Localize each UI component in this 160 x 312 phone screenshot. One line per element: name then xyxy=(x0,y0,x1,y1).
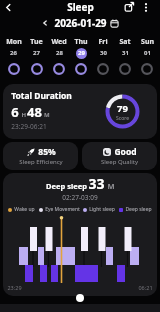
staticText: 2026-01-29 xyxy=(54,16,107,30)
staticText: 79 xyxy=(117,102,128,115)
button[interactable] xyxy=(142,2,150,13)
staticText: Mon xyxy=(6,37,22,47)
staticText: 48 xyxy=(27,103,42,121)
button[interactable] xyxy=(3,2,14,13)
staticText: 23:29 xyxy=(7,284,22,291)
staticText: 06:21 xyxy=(138,284,153,291)
button[interactable]: 01 xyxy=(136,47,158,59)
staticText: 6 xyxy=(11,103,19,121)
button[interactable]: 27 xyxy=(25,47,48,59)
staticText: 29 xyxy=(78,49,85,57)
button[interactable]: Deep sleep xyxy=(3,173,157,296)
staticText: 33 xyxy=(88,174,105,193)
staticText: Eye Movement xyxy=(45,206,80,213)
staticText: Wed xyxy=(51,37,67,47)
staticText: 28 xyxy=(56,49,63,57)
button[interactable]: 85% xyxy=(3,142,78,170)
button[interactable] xyxy=(123,1,135,13)
staticText: 85% xyxy=(38,146,56,158)
staticText: Wake up xyxy=(14,206,35,213)
button[interactable]: 29 xyxy=(70,47,92,59)
staticText: Sleep Quality xyxy=(101,158,138,166)
button[interactable]: Total Duration xyxy=(3,84,157,139)
staticText: H xyxy=(19,111,27,119)
staticText: Light sleep xyxy=(89,206,115,213)
staticText: 26 xyxy=(10,49,17,57)
staticText: Deep sleep xyxy=(125,206,152,213)
staticText: Sleep xyxy=(67,0,94,14)
button[interactable]: 30 xyxy=(92,47,114,59)
staticText: Total Duration xyxy=(11,90,72,102)
staticText: Score xyxy=(116,115,129,122)
staticText: 27 xyxy=(33,49,40,57)
staticText: Fri xyxy=(98,37,108,47)
staticText: M xyxy=(42,111,50,119)
staticText: Sun xyxy=(141,37,154,47)
button[interactable]: 26 xyxy=(2,47,25,59)
staticText: M xyxy=(105,181,115,191)
staticText: 30 xyxy=(100,49,107,57)
staticText: 02:27-03:09 xyxy=(62,193,98,202)
staticText: Good xyxy=(114,146,137,158)
staticText: 01 xyxy=(144,49,151,57)
button[interactable]: 31 xyxy=(114,47,136,59)
staticText: Thu xyxy=(74,37,88,47)
staticText: Sat xyxy=(119,37,131,47)
staticText: Deep sleep xyxy=(45,181,88,191)
button[interactable]: 2026-01-29 xyxy=(41,16,119,30)
staticText: 23:29-06:21 xyxy=(11,122,47,131)
staticText: 31 xyxy=(122,49,129,57)
button[interactable]: Good xyxy=(82,142,157,170)
staticText: Sleep Efficiency xyxy=(19,158,63,166)
staticText: Tue xyxy=(30,37,43,47)
button[interactable] xyxy=(76,294,84,302)
button[interactable]: 28 xyxy=(48,47,70,59)
